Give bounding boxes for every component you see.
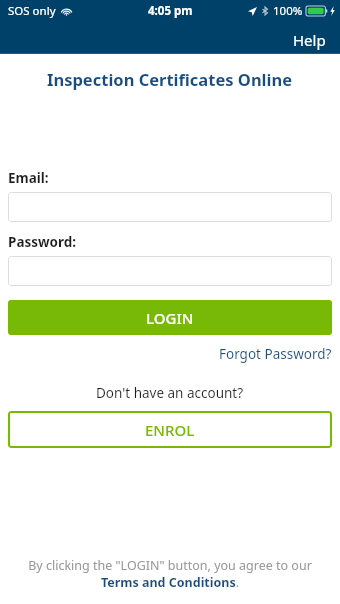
button[interactable]: LOGIN [8,300,332,335]
staticText: SOS only [8,3,56,19]
button[interactable]: Text input [8,192,332,222]
button[interactable]: Text input [8,256,332,286]
staticText: LOGIN [146,308,194,328]
staticText: Email: [8,169,49,187]
staticText: 4:05 pm [148,3,193,19]
button[interactable]: ENROL [8,411,332,448]
staticText: Inspection Certificates Online [47,68,293,90]
staticText: Forgot Password? [219,345,332,363]
button[interactable]: Help [289,26,330,54]
staticText: Don't have an account? [96,384,244,402]
staticText: Help [293,30,326,50]
staticText: Password: [8,233,77,251]
button[interactable]: Forgot Password? [211,343,340,365]
staticText: 100% [273,3,303,19]
staticText: ENROL [145,420,195,440]
staticText: By clicking the "LOGIN" button, you agre… [28,557,312,590]
